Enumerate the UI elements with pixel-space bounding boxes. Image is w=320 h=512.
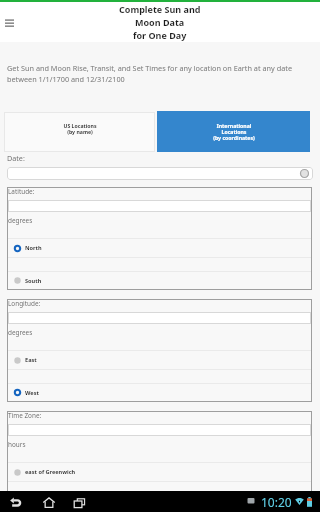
staticText: Latitude: <box>8 187 35 196</box>
staticText: 10:20 <box>261 494 292 510</box>
button[interactable]: US Locations (by name) <box>4 112 155 152</box>
button[interactable]: South <box>8 272 311 289</box>
button[interactable] <box>8 312 311 324</box>
staticText: Complete Sun and <box>119 3 201 15</box>
staticText: North <box>25 244 42 252</box>
button[interactable]: East <box>8 351 311 369</box>
staticText: US Locations (by name) <box>63 122 97 135</box>
staticText: for One Day <box>133 29 187 41</box>
button[interactable] <box>8 200 311 212</box>
button[interactable] <box>8 424 311 436</box>
staticText: Get Sun and Moon Rise, Transit, and Set … <box>7 63 293 73</box>
staticText: west of Greenwich <box>25 501 77 509</box>
staticText: degrees <box>8 216 33 225</box>
staticText: International Locations (by coordinates) <box>213 122 255 141</box>
button[interactable]: Back <box>5 492 26 512</box>
staticText: Date: <box>7 153 25 163</box>
button[interactable]: International Locations (by coordinates) <box>157 111 310 152</box>
button[interactable]: Recent apps <box>69 492 90 512</box>
staticText: Moon Data <box>135 16 185 28</box>
button[interactable]: west of Greenwich <box>8 496 311 512</box>
staticText: between 1/1/1700 and 12/31/2100 <box>7 74 125 84</box>
staticText: Time Zone: <box>8 411 42 420</box>
button[interactable]: North <box>8 239 311 257</box>
button[interactable]: Open navigation menu <box>0 13 19 32</box>
button[interactable] <box>7 167 313 180</box>
staticText: East <box>25 356 37 364</box>
staticText: South <box>25 277 42 285</box>
staticText: Longitude: <box>8 299 41 308</box>
staticText: hours <box>8 440 26 449</box>
button[interactable]: Home <box>38 492 59 512</box>
staticText: east of Greenwich <box>25 468 76 476</box>
staticText: degrees <box>8 328 33 337</box>
staticText: West <box>25 389 39 397</box>
button[interactable]: West <box>8 384 311 401</box>
button[interactable]: east of Greenwich <box>8 463 311 481</box>
